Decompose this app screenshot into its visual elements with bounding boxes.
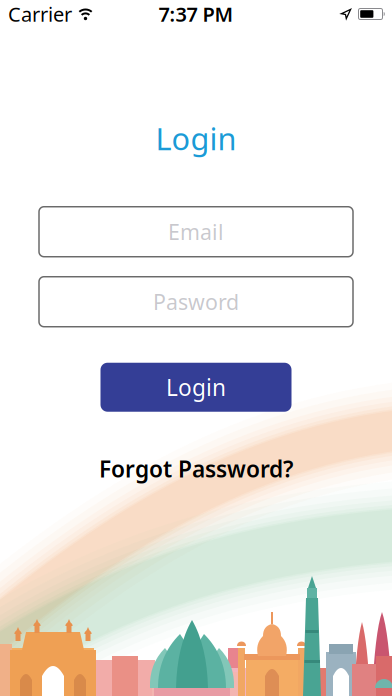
button[interactable]: Forgot Password? <box>99 454 293 484</box>
button[interactable]: Login <box>100 363 291 412</box>
staticText: Login <box>155 118 236 159</box>
staticText: Forgot Password? <box>99 454 293 484</box>
staticText: Email <box>168 218 224 246</box>
staticText: 7:37 PM <box>158 1 233 27</box>
staticText: Pasword <box>153 288 239 316</box>
staticText: Email <box>39 217 98 247</box>
textField[interactable]: Pasword <box>39 287 353 317</box>
staticText: Carrier <box>8 1 72 27</box>
textField[interactable]: Email <box>39 217 353 247</box>
staticText: Pasword <box>39 287 132 317</box>
staticText: Login <box>166 372 226 402</box>
